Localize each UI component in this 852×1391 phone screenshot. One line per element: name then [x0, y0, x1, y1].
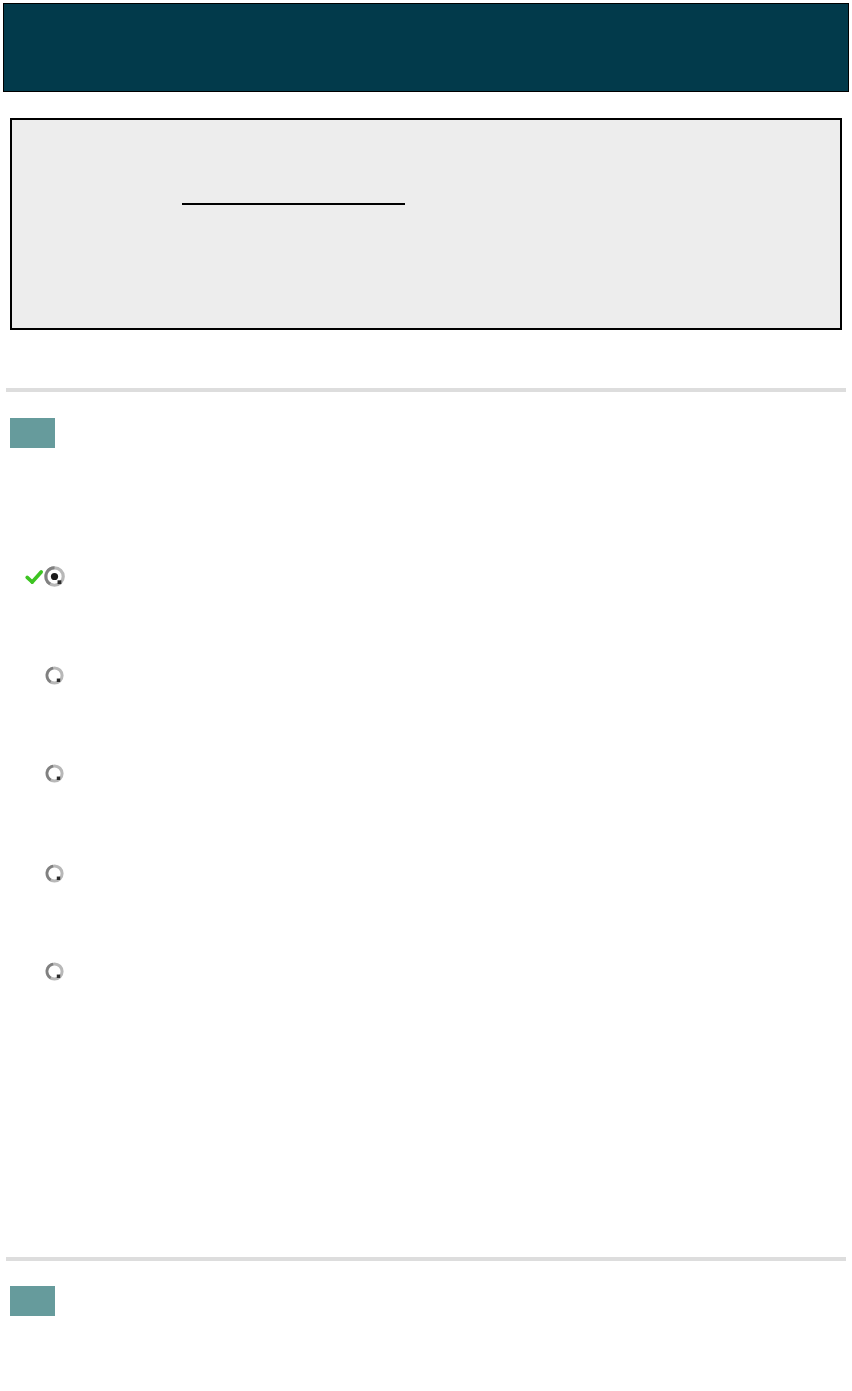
button[interactable]: [22, 753, 852, 853]
button[interactable]: [22, 556, 852, 655]
button[interactable]: [22, 853, 852, 951]
button[interactable]: [3, 3, 849, 92]
button[interactable]: [22, 655, 852, 753]
button[interactable]: [22, 951, 852, 1011]
